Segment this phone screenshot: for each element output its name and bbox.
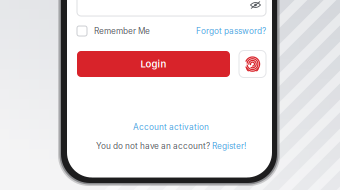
- staticText: Account activation: [133, 122, 209, 132]
- staticText: You do not have an account?: [96, 141, 210, 151]
- staticText: Remember Me: [94, 26, 150, 36]
- button[interactable]: Account activation: [133, 122, 209, 132]
- button[interactable]: Forgot password?: [196, 26, 266, 36]
- button[interactable]: Fingerprint login: [239, 50, 266, 77]
- staticText: Login: [140, 58, 166, 70]
- button[interactable]: Login: [77, 51, 230, 77]
- staticText: Register!: [212, 141, 246, 151]
- button[interactable]: Register!: [212, 141, 246, 151]
- button[interactable]: Remember Me: [77, 26, 150, 36]
- staticText: Forgot password?: [196, 26, 266, 36]
